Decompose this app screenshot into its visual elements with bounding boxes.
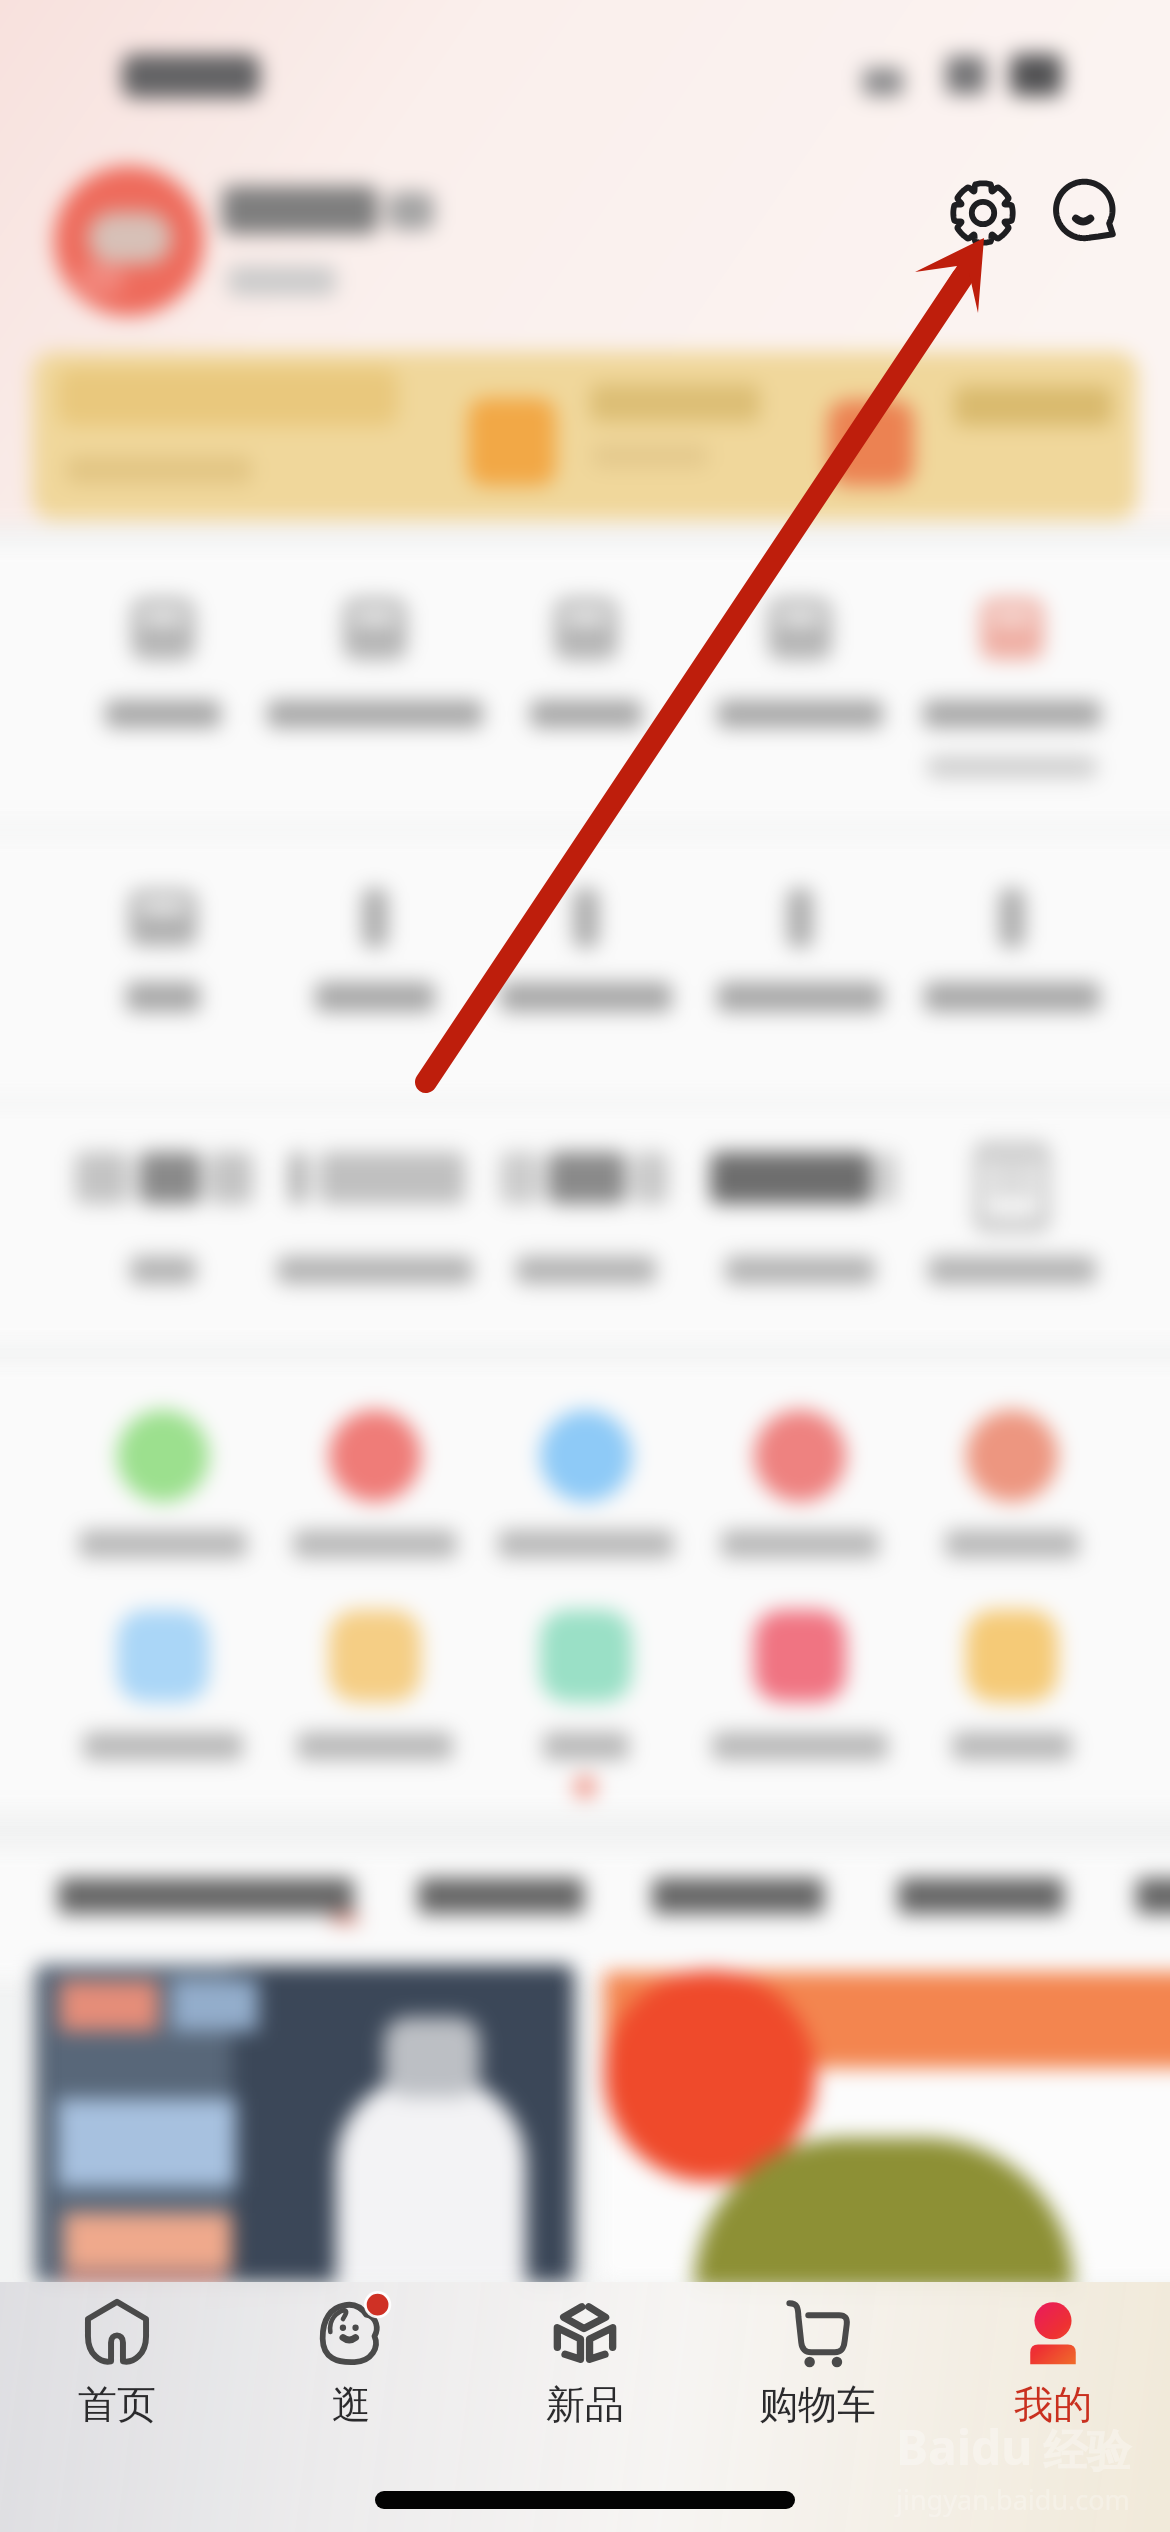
button[interactable]	[58, 1392, 268, 1582]
button[interactable]	[58, 860, 268, 1040]
button[interactable]	[58, 575, 268, 790]
button[interactable]	[58, 1878, 354, 1914]
button[interactable]	[598, 1958, 1170, 2283]
button[interactable]	[481, 575, 691, 790]
button[interactable]: 购物车	[717, 2298, 917, 2424]
staticText: 购物车	[759, 2380, 876, 2424]
button[interactable]: 逛	[251, 2298, 451, 2424]
button[interactable]	[270, 1592, 480, 1782]
button[interactable]: 我的	[953, 2298, 1153, 2424]
button[interactable]: Customer service chat	[1032, 158, 1142, 268]
button[interactable]	[418, 1878, 584, 1914]
staticText: 经验	[1043, 2424, 1131, 2479]
staticText: jingyan.baidu.com	[896, 2481, 1130, 2518]
staticText: 逛	[332, 2380, 371, 2424]
button[interactable]	[652, 1878, 824, 1914]
button[interactable]	[270, 575, 480, 790]
button[interactable]	[58, 1120, 268, 1320]
button[interactable]	[270, 860, 480, 1040]
button[interactable]	[695, 1120, 905, 1320]
staticText: 首页	[78, 2380, 156, 2424]
staticText: 我的	[1014, 2380, 1092, 2424]
button[interactable]: 新品	[485, 2298, 685, 2424]
button[interactable]	[898, 1878, 1064, 1914]
button[interactable]	[907, 1120, 1117, 1320]
button[interactable]	[907, 1592, 1117, 1782]
button[interactable]	[270, 1392, 480, 1582]
button[interactable]	[481, 860, 691, 1040]
button[interactable]: 首页	[17, 2298, 217, 2424]
button[interactable]	[36, 1965, 574, 2283]
button[interactable]: Settings	[928, 158, 1038, 268]
button[interactable]	[481, 1120, 691, 1320]
staticText: Baidu	[896, 2414, 1033, 2479]
button[interactable]	[695, 1592, 905, 1782]
button[interactable]	[270, 1120, 480, 1320]
staticText: 新品	[546, 2380, 624, 2424]
button[interactable]	[54, 166, 204, 316]
button[interactable]	[58, 1592, 268, 1782]
button[interactable]	[907, 1392, 1117, 1582]
button[interactable]	[695, 575, 905, 790]
button[interactable]	[481, 1392, 691, 1582]
button[interactable]	[907, 860, 1117, 1040]
button[interactable]	[481, 1592, 691, 1782]
button[interactable]	[695, 860, 905, 1040]
button[interactable]	[1136, 1878, 1170, 1914]
button[interactable]	[32, 352, 1138, 520]
button[interactable]	[695, 1392, 905, 1582]
button[interactable]	[907, 575, 1117, 790]
